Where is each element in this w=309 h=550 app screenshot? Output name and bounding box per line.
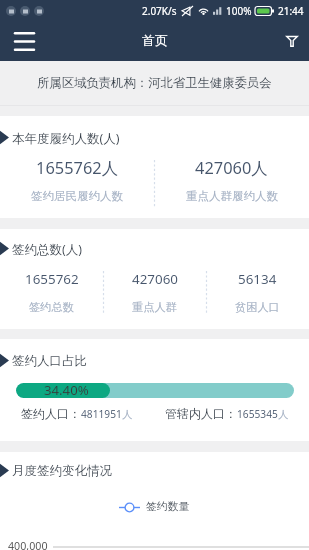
staticText: 签约人口： xyxy=(21,406,81,421)
staticText: 21:44 xyxy=(278,4,304,18)
staticText: 1655762 xyxy=(25,270,79,288)
staticText: 月度签约变化情况 xyxy=(12,463,112,478)
staticText: 人 xyxy=(122,408,133,421)
staticText: 首页 xyxy=(142,32,168,48)
staticText: 管辖内人口： xyxy=(165,406,237,421)
staticText: 重点人群 xyxy=(132,300,177,314)
staticText: 400,000 xyxy=(8,539,48,550)
staticText: 签约人口占比 xyxy=(12,353,87,368)
staticText: 100% xyxy=(226,4,252,18)
staticText: 427060人 xyxy=(195,156,268,178)
button[interactable]: Filter xyxy=(275,21,309,61)
staticText: 所属区域负责机构：河北省卫生健康委员会 xyxy=(37,75,272,91)
staticText: 2.07K/s xyxy=(142,4,177,18)
staticText: 人 xyxy=(278,408,289,421)
button[interactable]: Menu xyxy=(0,21,48,61)
staticText: 重点人群履约人数 xyxy=(186,189,278,203)
staticText: 签约总数(人) xyxy=(12,241,83,256)
staticText: 34.40% xyxy=(44,383,89,396)
staticText: 427060 xyxy=(132,270,178,288)
staticText: 签约数量 xyxy=(146,500,190,514)
staticText: 4811951 xyxy=(81,407,122,421)
staticText: 签约居民履约人数 xyxy=(31,189,123,203)
staticText: 签约总数 xyxy=(29,300,74,314)
staticText: 56134 xyxy=(238,270,277,288)
staticText: 本年度履约人数(人) xyxy=(12,130,120,145)
staticText: 1655345 xyxy=(237,407,278,421)
staticText: 贫困人口 xyxy=(235,300,280,314)
staticText: 1655762人 xyxy=(36,156,119,178)
